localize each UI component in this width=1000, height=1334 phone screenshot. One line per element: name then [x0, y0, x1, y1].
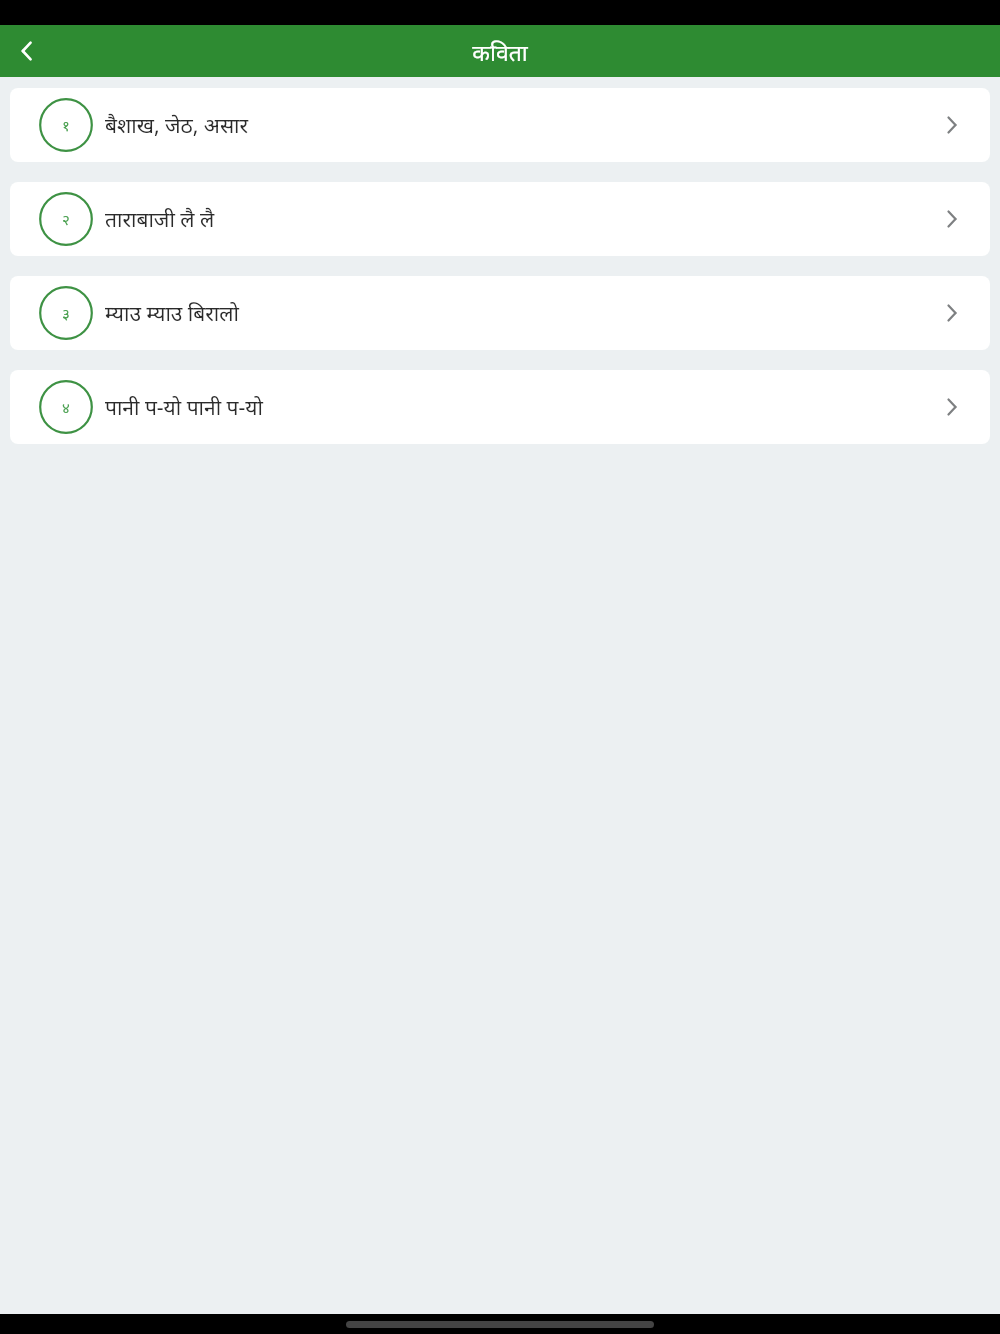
button[interactable]: ४: [10, 370, 990, 444]
staticText: ताराबाजी लै लै: [105, 205, 925, 234]
button[interactable]: ३: [10, 276, 990, 350]
staticText: बैशाख, जेठ, असार: [105, 111, 925, 140]
staticText: म्याउ म्याउ बिरालो: [105, 299, 925, 328]
button[interactable]: २: [10, 182, 990, 256]
staticText: ४: [62, 397, 70, 417]
button[interactable]: Back: [0, 25, 56, 77]
staticText: पानी प-यो पानी प-यो: [105, 393, 925, 422]
staticText: ३: [62, 303, 70, 323]
staticText: कविता: [472, 36, 528, 67]
staticText: १: [62, 115, 70, 135]
staticText: २: [62, 209, 70, 229]
button[interactable]: १: [10, 88, 990, 162]
